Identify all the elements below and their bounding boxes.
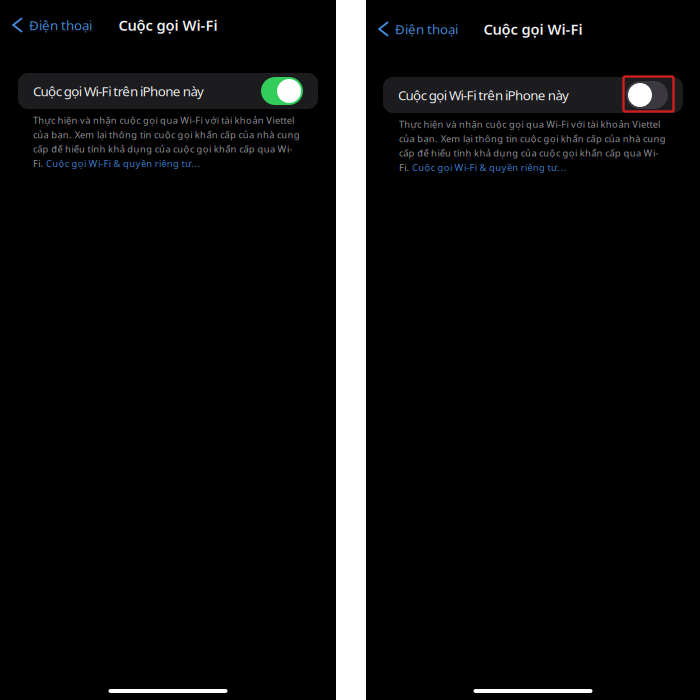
staticText: của bạn. Xem lại thông tin cuộc gọi khẩn… [33,128,300,141]
staticText: Cuộc gọi Wi-Fi & quyền riêng tư... [412,161,567,174]
staticText: Cuộc gọi Wi-Fi [118,15,217,35]
button[interactable]: Cuộc gọi Wi-Fi trên iPhone này [383,77,683,113]
button[interactable]: Back to Điện thoại [0,11,98,39]
staticText: Cuộc gọi Wi-Fi & quyền riêng tư... [46,157,201,170]
staticText: Thực hiện và nhận cuộc gọi qua Wi-Fi với… [33,114,294,126]
staticText: Điện thoại [395,20,458,38]
button[interactable]: Thực hiện và nhận cuộc gọi qua Wi-Fi với… [33,114,300,170]
staticText: cấp để hiểu tính khả dụng của cuộc gọi k… [33,143,292,155]
staticText: Cuộc gọi Wi-Fi trên iPhone này [33,82,204,100]
staticText: Fi. [399,161,412,174]
staticText: Điện thoại [29,16,92,34]
button[interactable]: Back to Điện thoại [366,15,464,43]
staticText: của bạn. Xem lại thông tin cuộc gọi khẩn… [399,132,666,145]
staticText: Fi. [33,157,46,170]
staticText: Cuộc gọi Wi-Fi [483,19,582,39]
button[interactable]: Thực hiện và nhận cuộc gọi qua Wi-Fi với… [399,118,666,174]
staticText: Thực hiện và nhận cuộc gọi qua Wi-Fi với… [399,118,660,130]
staticText: Cuộc gọi Wi-Fi trên iPhone này [398,86,569,104]
button[interactable]: Cuộc gọi Wi-Fi trên iPhone này [18,73,318,109]
staticText: cấp để hiểu tính khả dụng của cuộc gọi k… [399,147,658,159]
